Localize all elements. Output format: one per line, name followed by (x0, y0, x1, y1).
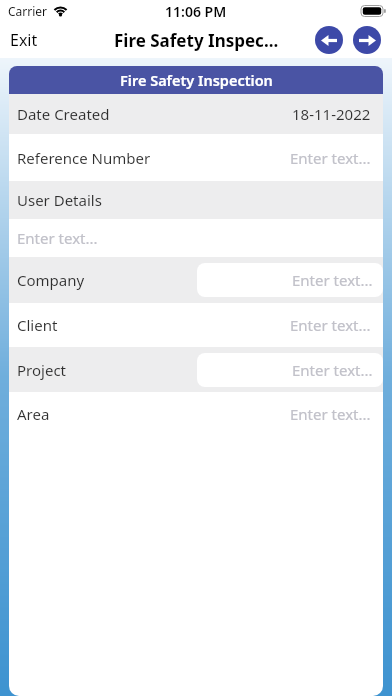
staticText: 18-11-2022 (292, 104, 371, 124)
staticText: Enter text... (292, 360, 373, 380)
staticText: Date Created (17, 104, 110, 124)
staticText: Enter text... (290, 148, 371, 168)
button[interactable]: Exit (10, 29, 38, 51)
button[interactable]: Client (9, 303, 383, 347)
staticText: Enter text... (290, 315, 371, 335)
button[interactable]: Project (9, 347, 383, 392)
staticText: User Details (17, 190, 102, 210)
staticText: Reference Number (17, 148, 151, 168)
button[interactable]: Date Created (9, 94, 383, 134)
staticText: Enter text... (292, 270, 373, 290)
staticText: Fire Safety Inspec... (114, 29, 279, 52)
button[interactable]: User Details (9, 181, 383, 219)
staticText: Area (17, 404, 50, 424)
button[interactable] (353, 26, 381, 54)
button[interactable]: Reference Number (9, 134, 383, 181)
staticText: Company (17, 270, 85, 290)
staticText: 11:06 PM (165, 2, 227, 21)
button[interactable]: Area (9, 392, 383, 436)
staticText: Carrier (8, 3, 48, 19)
staticText: Exit (10, 29, 38, 51)
button[interactable] (315, 26, 343, 54)
button[interactable]: Enter text... (9, 219, 383, 257)
button[interactable]: Enter text... (197, 353, 383, 387)
staticText: Fire Safety Inspection (120, 70, 273, 90)
button[interactable]: Company (9, 257, 383, 303)
staticText: Enter text... (290, 404, 371, 424)
staticText: Enter text... (17, 228, 98, 248)
button[interactable]: Enter text... (197, 263, 383, 297)
staticText: Client (17, 315, 58, 335)
staticText: Project (17, 360, 66, 380)
